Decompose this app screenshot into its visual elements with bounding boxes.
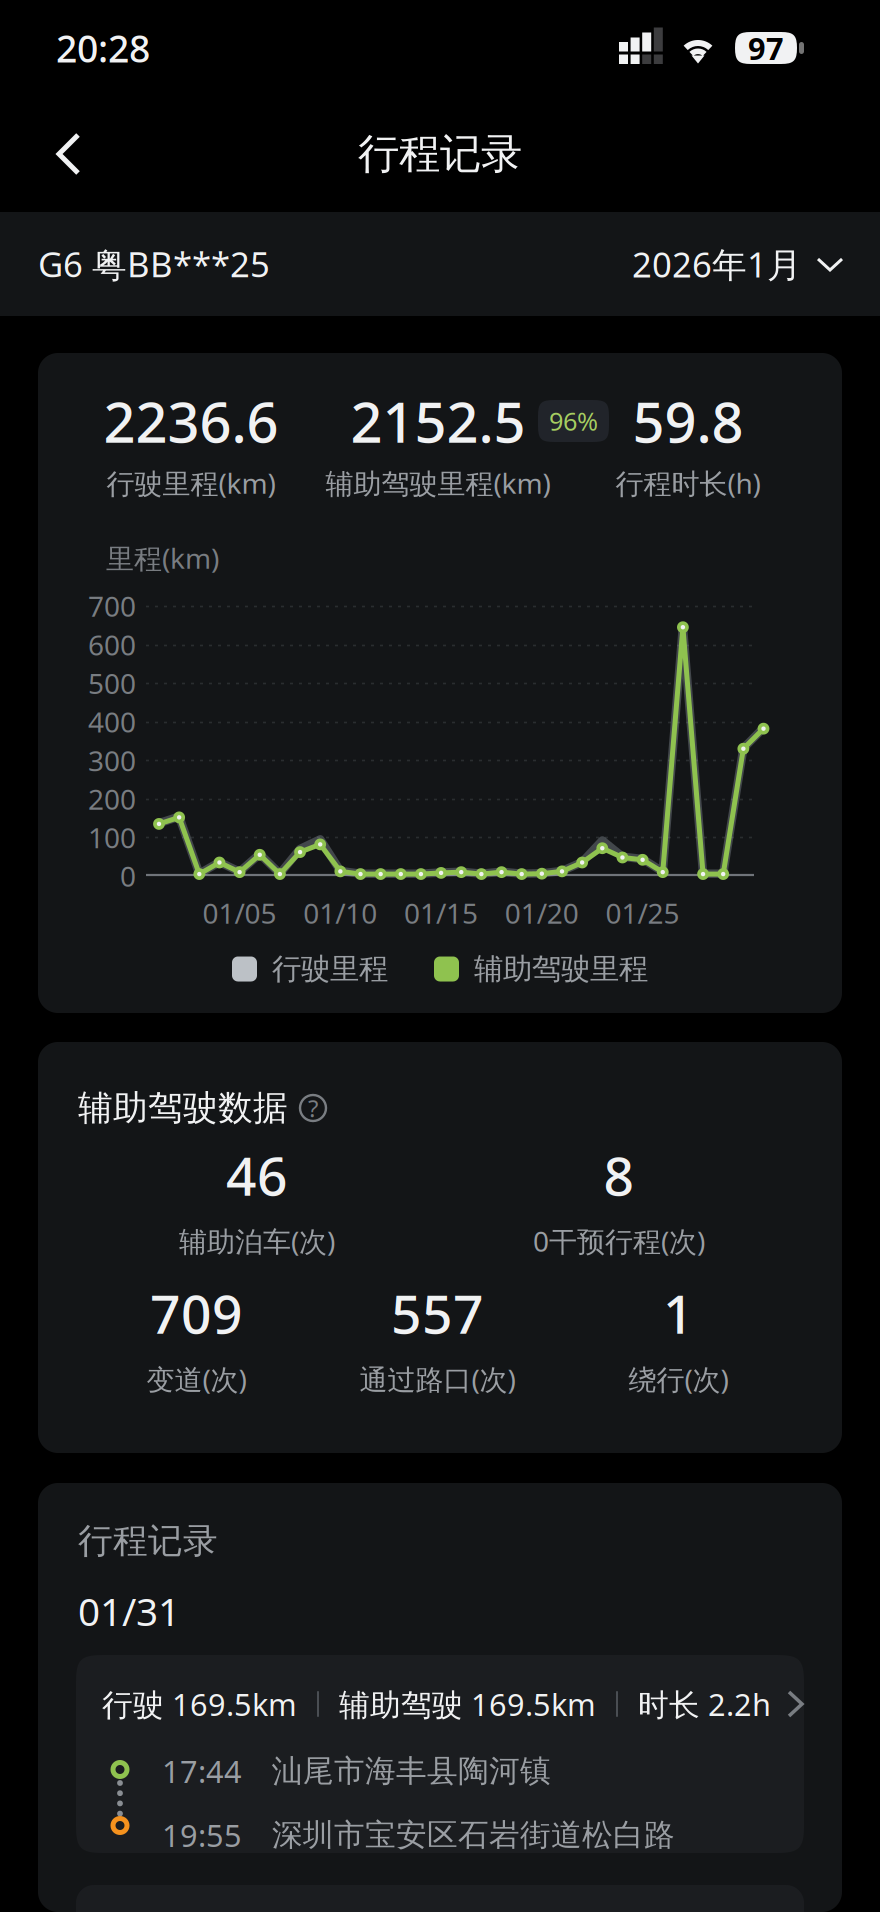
- staticText: 2026年1月: [632, 241, 802, 287]
- staticText: 100: [88, 819, 136, 856]
- staticText: 300: [88, 742, 136, 779]
- staticText: 700: [88, 587, 136, 625]
- staticText: 59.8: [632, 384, 743, 458]
- staticText: 行程时长(h): [615, 464, 760, 502]
- staticText: 2152.5: [350, 384, 525, 458]
- staticText: 辅助驾驶里程: [474, 951, 648, 987]
- button[interactable]: 2026年1月: [632, 212, 844, 316]
- staticText: 709: [150, 1278, 243, 1348]
- staticText: 01/20: [505, 894, 579, 932]
- staticText: ?: [308, 1092, 318, 1124]
- staticText: 行驶里程(km): [106, 464, 275, 502]
- button[interactable]: 返回: [30, 108, 107, 200]
- staticText: 行驶里程: [272, 951, 388, 987]
- staticText: 里程(km): [106, 539, 219, 577]
- staticText: 01/05: [203, 894, 277, 932]
- staticText: 557: [391, 1278, 484, 1348]
- staticText: 19:55: [162, 1815, 242, 1855]
- staticText: 时长 2.2h: [638, 1684, 771, 1724]
- staticText: 辅助驾驶数据: [78, 1087, 288, 1129]
- staticText: 46: [226, 1140, 288, 1210]
- staticText: 0干预行程(次): [533, 1222, 705, 1260]
- staticText: 96%: [549, 404, 598, 438]
- staticText: 辅助驾驶 169.5km: [339, 1684, 596, 1724]
- staticText: 600: [88, 626, 136, 663]
- staticText: 行驶 169.5km: [102, 1684, 297, 1724]
- staticText: 17:44: [162, 1751, 242, 1791]
- button[interactable]: G6 粤BB***25: [38, 212, 270, 316]
- staticText: 01/10: [303, 894, 377, 932]
- staticText: 500: [88, 665, 136, 702]
- staticText: 汕尾市海丰县陶河镇: [272, 1752, 551, 1790]
- staticText: 20:28: [56, 23, 150, 73]
- staticText: 200: [88, 780, 136, 817]
- staticText: 8: [603, 1140, 634, 1210]
- staticText: 行程记录: [78, 1520, 218, 1562]
- staticText: 深圳市宝安区石岩街道松白路: [272, 1816, 675, 1854]
- button[interactable]: 行驶 169.5km: [76, 1655, 804, 1853]
- staticText: 2236.6: [103, 384, 278, 458]
- staticText: 辅助驾驶里程(km): [325, 464, 550, 502]
- staticText: 01/31: [78, 1585, 180, 1637]
- staticText: 97: [748, 28, 784, 68]
- staticText: 01/25: [606, 894, 680, 932]
- staticText: 行程记录: [358, 129, 522, 179]
- staticText: 01/15: [404, 894, 478, 932]
- staticText: 1: [663, 1278, 694, 1348]
- staticText: G6 粤BB***25: [38, 241, 270, 287]
- staticText: 通过路口(次): [359, 1360, 515, 1398]
- staticText: 400: [88, 703, 136, 740]
- staticText: 辅助泊车(次): [179, 1222, 335, 1260]
- staticText: 绕行(次): [628, 1360, 728, 1398]
- staticText: 0: [120, 857, 136, 895]
- staticText: 变道(次): [146, 1360, 246, 1398]
